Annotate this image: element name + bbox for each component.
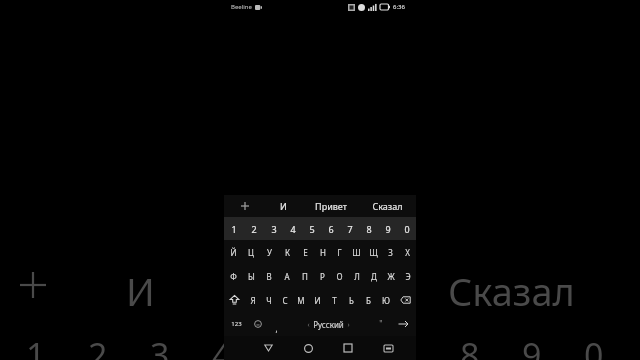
button[interactable]: Й — [224, 240, 242, 264]
staticText: Ю — [382, 295, 390, 306]
button[interactable]: 5 — [302, 217, 321, 240]
staticText: Й — [230, 247, 237, 258]
staticText: Ф — [230, 271, 237, 282]
button[interactable]: " — [371, 312, 390, 336]
button[interactable]: Ь — [343, 288, 360, 312]
button[interactable]: Hide keyboard — [368, 336, 408, 360]
staticText: 9 — [522, 332, 542, 360]
button[interactable]: Б — [360, 288, 377, 312]
staticText: У — [267, 247, 272, 258]
button[interactable]: 2 — [244, 217, 264, 240]
staticText: Русский — [313, 319, 344, 330]
button[interactable]: 3 — [264, 217, 283, 240]
staticText: Ц — [248, 247, 254, 258]
button[interactable]: Т — [326, 288, 343, 312]
staticText: › — [347, 320, 350, 330]
button[interactable]: А — [278, 264, 296, 288]
staticText: А — [284, 271, 290, 282]
button[interactable]: Р — [314, 264, 331, 288]
staticText: Сказал — [372, 200, 403, 212]
button[interactable]: Э — [399, 264, 416, 288]
button[interactable]: Х — [399, 240, 416, 264]
button[interactable]: Н — [314, 240, 331, 264]
button[interactable]: П — [296, 264, 314, 288]
button[interactable]: Д — [365, 264, 382, 288]
staticText: 8 — [366, 223, 372, 235]
staticText: ‹ — [307, 320, 310, 330]
button[interactable]: Shift — [224, 288, 245, 312]
staticText: О — [336, 271, 343, 282]
button[interactable]: Add — [224, 195, 265, 217]
staticText: Е — [303, 247, 308, 258]
button[interactable]: Backspace — [394, 288, 416, 312]
button[interactable]: ‹ — [286, 312, 371, 336]
button[interactable]: И — [309, 288, 326, 312]
staticText: Т — [332, 295, 337, 306]
button[interactable]: Г — [331, 240, 348, 264]
button[interactable]: З — [382, 240, 399, 264]
staticText: Щ — [369, 247, 378, 258]
button[interactable]: 8 — [359, 217, 378, 240]
staticText: С — [282, 295, 288, 306]
staticText: 1 — [26, 332, 46, 360]
staticText: Л — [354, 271, 360, 282]
button[interactable]: Ч — [261, 288, 277, 312]
button[interactable]: К — [278, 240, 296, 264]
staticText: З — [388, 247, 393, 258]
button[interactable]: Щ — [365, 240, 382, 264]
staticText: 4 — [212, 332, 232, 360]
staticText: 7 — [347, 223, 353, 235]
button[interactable]: Сказал — [359, 195, 416, 217]
button[interactable]: Back — [248, 336, 288, 360]
button[interactable]: , — [267, 312, 286, 336]
button[interactable]: 1 — [224, 217, 244, 240]
staticText: Р — [320, 271, 325, 282]
button[interactable]: 9 — [378, 217, 397, 240]
button[interactable]: 7 — [340, 217, 359, 240]
button[interactable]: Recent apps — [328, 336, 368, 360]
button[interactable]: С — [277, 288, 293, 312]
button[interactable]: Enter — [390, 312, 416, 336]
staticText: Я — [250, 295, 256, 306]
button[interactable]: Ы — [242, 264, 260, 288]
button[interactable]: М — [293, 288, 309, 312]
staticText: 9 — [385, 223, 391, 235]
staticText: Н — [320, 247, 326, 258]
button[interactable]: О — [331, 264, 348, 288]
button[interactable]: Ж — [382, 264, 399, 288]
staticText: Ь — [349, 295, 354, 306]
staticText: Ы — [248, 271, 255, 282]
button[interactable]: Home — [288, 336, 328, 360]
staticText: Э — [405, 271, 411, 282]
staticText: Б — [366, 295, 371, 306]
staticText: 2 — [88, 332, 108, 360]
button[interactable]: Emoji — [248, 312, 267, 336]
button[interactable]: 6 — [321, 217, 340, 240]
staticText: Beeline — [231, 3, 252, 11]
button[interactable]: У — [260, 240, 278, 264]
button[interactable]: 4 — [283, 217, 302, 240]
button[interactable]: Ц — [242, 240, 260, 264]
button[interactable]: Л — [348, 264, 365, 288]
button[interactable]: Ю — [377, 288, 394, 312]
button[interactable]: Ш — [348, 240, 365, 264]
staticText: Х — [405, 247, 410, 258]
staticText: Г — [337, 247, 342, 258]
button[interactable]: И — [265, 195, 302, 217]
staticText: 2 — [251, 223, 257, 235]
button[interactable]: В — [260, 264, 278, 288]
button[interactable]: Я — [245, 288, 261, 312]
staticText: Ж — [387, 271, 395, 282]
staticText: И — [126, 265, 155, 317]
button[interactable]: Привет — [302, 195, 359, 217]
button[interactable]: 123 — [224, 312, 248, 336]
button[interactable]: Ф — [224, 264, 242, 288]
staticText: К — [285, 247, 290, 258]
button[interactable]: 0 — [397, 217, 416, 240]
staticText: И — [314, 295, 321, 306]
staticText: М — [297, 295, 305, 306]
staticText: Привет — [315, 200, 347, 212]
button[interactable]: Е — [296, 240, 314, 264]
staticText: 7 — [398, 332, 418, 360]
staticText: 123 — [231, 320, 242, 328]
